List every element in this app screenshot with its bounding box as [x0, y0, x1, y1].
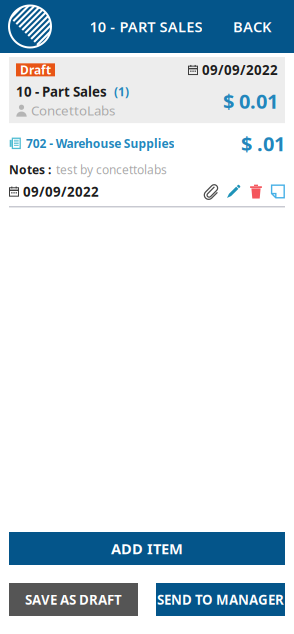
- staticText: SEND TO MANAGER: [157, 591, 284, 608]
- staticText: 10 - PART SALES: [90, 17, 202, 36]
- staticText: 10 - Part Sales: [16, 83, 107, 100]
- button[interactable]: 702 - Warehouse Supplies: [9, 135, 174, 151]
- button[interactable]: Attach file: [203, 183, 218, 199]
- staticText: ADD ITEM: [111, 539, 183, 558]
- staticText: ConcettoLabs: [31, 101, 115, 119]
- staticText: Notes :: [9, 162, 51, 178]
- staticText: 09/09/2022: [202, 61, 278, 79]
- staticText: SAVE AS DRAFT: [25, 591, 122, 608]
- button[interactable]: Edit: [226, 184, 241, 199]
- button[interactable]: SAVE AS DRAFT: [9, 583, 138, 616]
- button[interactable]: BACK: [223, 7, 294, 46]
- button[interactable]: Home: [0, 5, 57, 47]
- staticText: 702 - Warehouse Supplies: [26, 135, 174, 151]
- button[interactable]: SEND TO MANAGER: [156, 583, 285, 616]
- staticText: $ 0.01: [223, 88, 278, 114]
- button[interactable]: ADD ITEM: [9, 532, 285, 565]
- staticText: test by concettolabs: [56, 162, 167, 178]
- staticText: (1): [114, 84, 129, 99]
- button[interactable]: Add note: [271, 184, 285, 199]
- staticText: Draft: [20, 62, 51, 78]
- staticText: 09/09/2022: [23, 183, 99, 200]
- button[interactable]: Delete: [249, 184, 263, 199]
- staticText: $ .01: [241, 130, 285, 157]
- staticText: BACK: [233, 17, 271, 36]
